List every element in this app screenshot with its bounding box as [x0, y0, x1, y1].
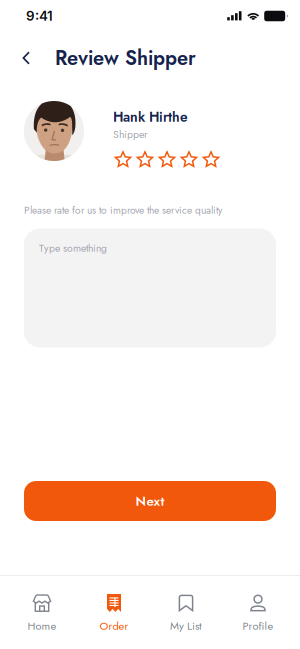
button[interactable]: Next — [24, 481, 276, 521]
staticText: Next — [135, 491, 164, 511]
staticText: Profile — [242, 618, 273, 634]
staticText: Shipper — [113, 127, 148, 142]
button[interactable]: Profile — [222, 594, 294, 634]
button[interactable]: My List — [150, 594, 222, 634]
button[interactable]: Rate 2 stars — [135, 152, 155, 168]
staticText: Home — [27, 618, 56, 634]
button[interactable]: Rate 3 stars — [157, 152, 177, 168]
staticText: 9:41 — [26, 8, 53, 24]
button[interactable]: Rate 4 stars — [179, 152, 199, 168]
staticText: My List — [170, 618, 202, 634]
staticText: Type something — [39, 240, 107, 255]
staticText: Review Shipper — [55, 43, 196, 72]
button[interactable]: Rate 5 stars — [201, 152, 221, 168]
button[interactable]: Order — [78, 594, 150, 634]
button[interactable]: Home — [6, 594, 78, 634]
staticText: Order — [99, 618, 128, 634]
staticText: Hank Hirthe — [113, 107, 188, 127]
button[interactable]: Rate 1 stars — [113, 152, 133, 168]
button[interactable]: Back — [22, 41, 55, 75]
staticText: Please rate for us to improve the servic… — [24, 203, 222, 217]
